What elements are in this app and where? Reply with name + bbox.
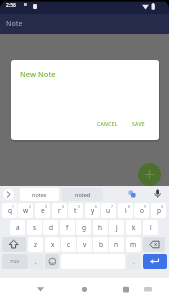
staticText: l <box>150 223 152 232</box>
staticText: j <box>116 223 118 232</box>
button[interactable]: u <box>101 203 116 218</box>
staticText: y <box>91 206 95 215</box>
button[interactable] <box>57 278 113 300</box>
staticText: c <box>67 240 71 249</box>
button[interactable]: z <box>28 237 43 252</box>
staticText: h <box>98 223 103 232</box>
staticText: s <box>33 223 37 232</box>
button[interactable] <box>45 254 59 269</box>
button[interactable]: , <box>29 254 43 269</box>
button[interactable]: p <box>151 203 166 218</box>
button[interactable]: f <box>60 220 75 235</box>
staticText: d <box>49 223 53 232</box>
staticText: e <box>41 206 45 215</box>
button[interactable] <box>113 278 169 300</box>
staticText: SAVE <box>132 121 145 128</box>
button[interactable]: q <box>2 203 17 218</box>
button[interactable] <box>143 254 167 269</box>
staticText: g <box>82 223 86 232</box>
staticText: 1 <box>12 204 14 209</box>
staticText: o <box>140 206 144 215</box>
staticText: f <box>66 223 69 232</box>
staticText: w <box>23 206 29 215</box>
staticText: m <box>130 240 137 249</box>
button[interactable] <box>143 237 165 252</box>
button[interactable] <box>3 189 14 200</box>
staticText: 2 <box>29 204 31 209</box>
button[interactable]: y <box>85 203 100 218</box>
button[interactable]: o <box>134 203 149 218</box>
button[interactable]: b <box>93 237 108 252</box>
staticText: B <box>24 2 27 8</box>
button[interactable]: noted <box>62 188 103 201</box>
button[interactable]: m <box>126 237 141 252</box>
staticText: b <box>99 240 103 249</box>
staticText: Note <box>6 19 23 29</box>
staticText: 3 <box>45 204 47 209</box>
staticText: p <box>157 206 161 215</box>
button[interactable] <box>138 163 161 186</box>
staticText: 5 <box>78 204 80 209</box>
button[interactable]: l <box>143 220 158 235</box>
staticText: u <box>106 206 111 215</box>
staticText: ?123 <box>10 259 20 265</box>
staticText: . <box>133 258 135 266</box>
button[interactable] <box>0 278 57 300</box>
staticText: r <box>58 206 61 215</box>
staticText: 8 <box>128 204 130 209</box>
button[interactable]: . <box>127 254 141 269</box>
button[interactable]: ?123 <box>2 254 28 269</box>
button[interactable]: n <box>109 237 124 252</box>
button[interactable]: t <box>68 203 83 218</box>
button[interactable]: h <box>93 220 108 235</box>
button[interactable]: w <box>18 203 33 218</box>
button[interactable]: e <box>35 203 50 218</box>
staticText: x <box>51 240 55 249</box>
staticText: 9 <box>144 204 146 209</box>
staticText: i <box>125 206 127 215</box>
staticText: 7 <box>111 204 113 209</box>
button[interactable]: k <box>126 220 141 235</box>
staticText: noted <box>75 191 91 198</box>
staticText: t <box>74 206 77 215</box>
staticText: 4 <box>62 204 64 209</box>
staticText: q <box>8 206 12 215</box>
button[interactable]: i <box>118 203 133 218</box>
staticText: k <box>132 223 136 232</box>
button[interactable]: g <box>76 220 91 235</box>
button[interactable]: r <box>52 203 67 218</box>
staticText: a <box>16 223 20 232</box>
button[interactable]: a <box>10 220 25 235</box>
staticText: 6 <box>95 204 97 209</box>
staticText: 0 <box>161 204 163 209</box>
button[interactable] <box>2 237 26 252</box>
staticText: New Note <box>20 69 56 79</box>
button[interactable]: j <box>109 220 124 235</box>
staticText: v <box>83 240 87 249</box>
button[interactable]: s <box>27 220 42 235</box>
button[interactable]: v <box>77 237 92 252</box>
staticText: 2:56 <box>6 2 16 9</box>
button[interactable]: c <box>61 237 76 252</box>
staticText: notes <box>32 191 47 198</box>
button[interactable]: CANCEL <box>93 117 122 132</box>
staticText: n <box>114 240 119 249</box>
button[interactable]: x <box>45 237 60 252</box>
staticText: , <box>35 258 37 266</box>
staticText: z <box>34 240 38 249</box>
button[interactable]: SAVE <box>128 117 149 132</box>
button[interactable]: d <box>43 220 58 235</box>
button[interactable]: notes <box>20 188 59 201</box>
staticText: CANCEL <box>97 121 118 128</box>
